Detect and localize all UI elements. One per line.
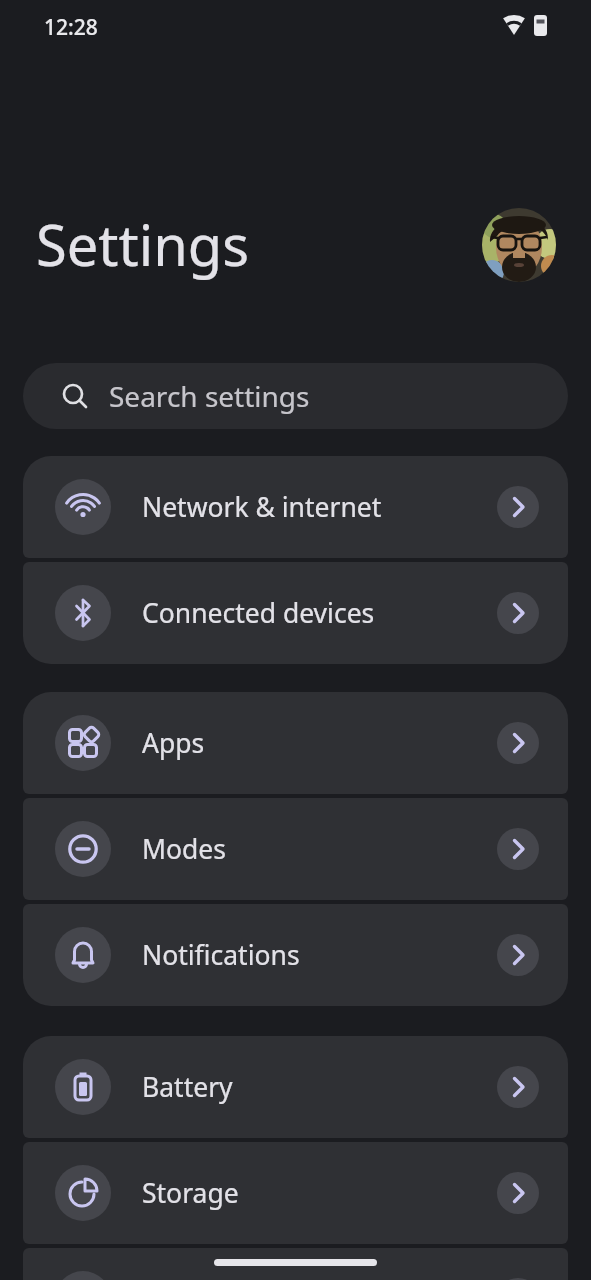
staticText: Notifications (142, 937, 497, 973)
staticText: Settings (36, 206, 250, 282)
staticText: Apps (142, 725, 497, 761)
staticText: Modes (142, 831, 497, 867)
staticText: Storage (142, 1175, 497, 1211)
button[interactable]: Modes (23, 798, 568, 900)
staticText: Battery (142, 1069, 497, 1105)
button[interactable]: Search settings (23, 363, 568, 429)
button[interactable]: Notifications (23, 904, 568, 1006)
staticText: Search settings (109, 377, 310, 415)
button[interactable]: Apps (23, 692, 568, 794)
staticText: Network & internet (142, 489, 497, 525)
staticText: Connected devices (142, 595, 497, 631)
button[interactable] (23, 1248, 568, 1280)
button[interactable]: Battery (23, 1036, 568, 1138)
button[interactable] (482, 208, 556, 282)
staticText: 12:28 (44, 13, 98, 42)
button[interactable]: Storage (23, 1142, 568, 1244)
button[interactable]: Connected devices (23, 562, 568, 664)
button[interactable]: Network & internet (23, 456, 568, 558)
